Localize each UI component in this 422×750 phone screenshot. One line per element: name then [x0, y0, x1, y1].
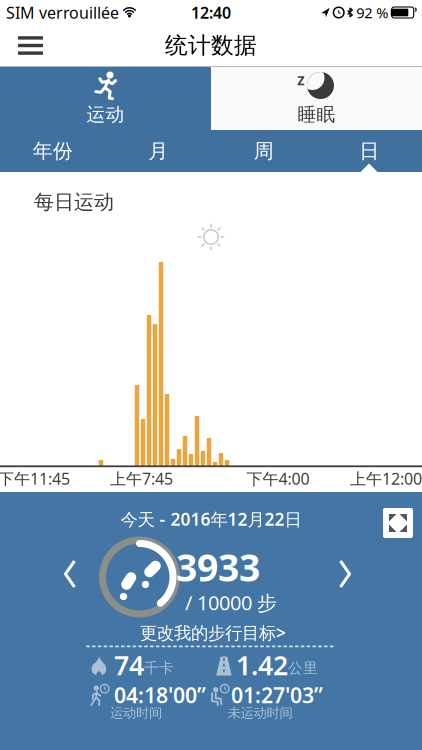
- button[interactable]: z: [211, 67, 422, 130]
- button[interactable]: 日: [316, 130, 422, 172]
- staticText: 运动: [86, 103, 124, 126]
- staticText: 月: [148, 139, 168, 163]
- staticText: / 10000 步: [185, 589, 277, 616]
- staticText: 年份: [33, 139, 73, 163]
- staticText: 更改我的步行目标>: [140, 621, 286, 644]
- staticText: 74: [114, 647, 144, 683]
- button[interactable]: 周: [211, 130, 316, 172]
- staticText: 上午7:45: [110, 468, 173, 489]
- button[interactable]: Menu: [0, 25, 43, 66]
- staticText: 日: [359, 139, 379, 163]
- staticText: SIM verrouillée: [6, 2, 119, 23]
- button[interactable]: Previous day: [55, 551, 85, 597]
- staticText: 周: [254, 139, 274, 163]
- staticText: 3933: [176, 542, 260, 592]
- button[interactable]: 更改我的步行目标>: [134, 618, 292, 647]
- staticText: 04:18'00”: [114, 681, 206, 709]
- staticText: 上午12:00: [350, 468, 422, 489]
- staticText: 睡眠: [297, 103, 335, 126]
- staticText: 每日运动: [34, 190, 114, 214]
- staticText: 统计数据: [165, 32, 257, 59]
- button[interactable]: 年份: [0, 130, 105, 172]
- button[interactable]: Next day: [330, 551, 360, 597]
- staticText: 01:27'03”: [231, 681, 323, 709]
- staticText: 未运动时间: [227, 705, 292, 721]
- staticText: 公里: [288, 659, 318, 677]
- staticText: 92 %: [356, 3, 388, 22]
- staticText: z: [297, 68, 305, 90]
- staticText: 千卡: [144, 659, 174, 677]
- staticText: 运动时间: [110, 705, 162, 721]
- staticText: 12:40: [191, 2, 231, 23]
- button[interactable]: 运动: [0, 67, 211, 130]
- button[interactable]: Fullscreen: [383, 508, 413, 538]
- staticText: 下午4:00: [246, 468, 309, 489]
- staticText: 今天 - 2016年12月22日: [120, 507, 301, 530]
- button[interactable]: 月: [105, 130, 211, 172]
- staticText: 下午11:45: [0, 468, 70, 489]
- staticText: 1.42: [236, 647, 288, 683]
